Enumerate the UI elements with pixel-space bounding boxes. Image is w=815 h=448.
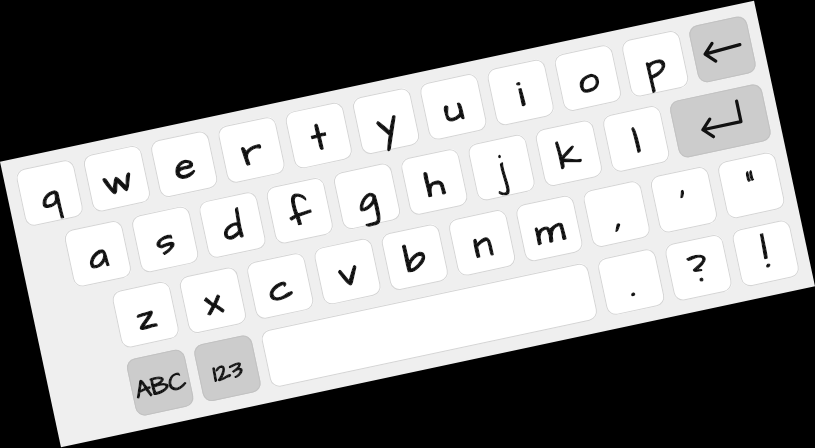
button[interactable]: On-screen keyboard (0, 0, 815, 448)
